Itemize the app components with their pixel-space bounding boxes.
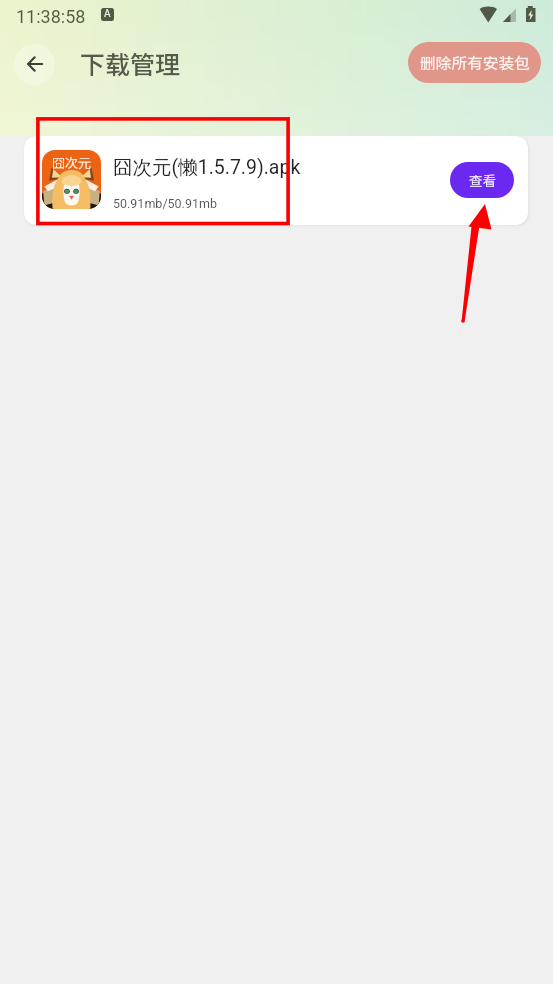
button[interactable]: 囧次元 (24, 136, 528, 225)
button[interactable]: 删除所有安装包 (408, 42, 541, 83)
button[interactable]: Back (14, 44, 55, 85)
button[interactable]: 查看 (450, 162, 514, 198)
staticText: A (104, 8, 111, 20)
staticText: 囧次元(懒1.5.7.9).apk (113, 155, 301, 180)
staticText: 囧次元 (52, 153, 92, 172)
staticText: 查看 (469, 170, 496, 190)
other: Status icons (478, 5, 540, 27)
staticText: 11:38:58 (16, 6, 86, 27)
staticText: 删除所有安装包 (420, 51, 530, 74)
staticText: 50.91mb/50.91mb (113, 196, 217, 211)
staticText: 下载管理 (80, 45, 181, 81)
